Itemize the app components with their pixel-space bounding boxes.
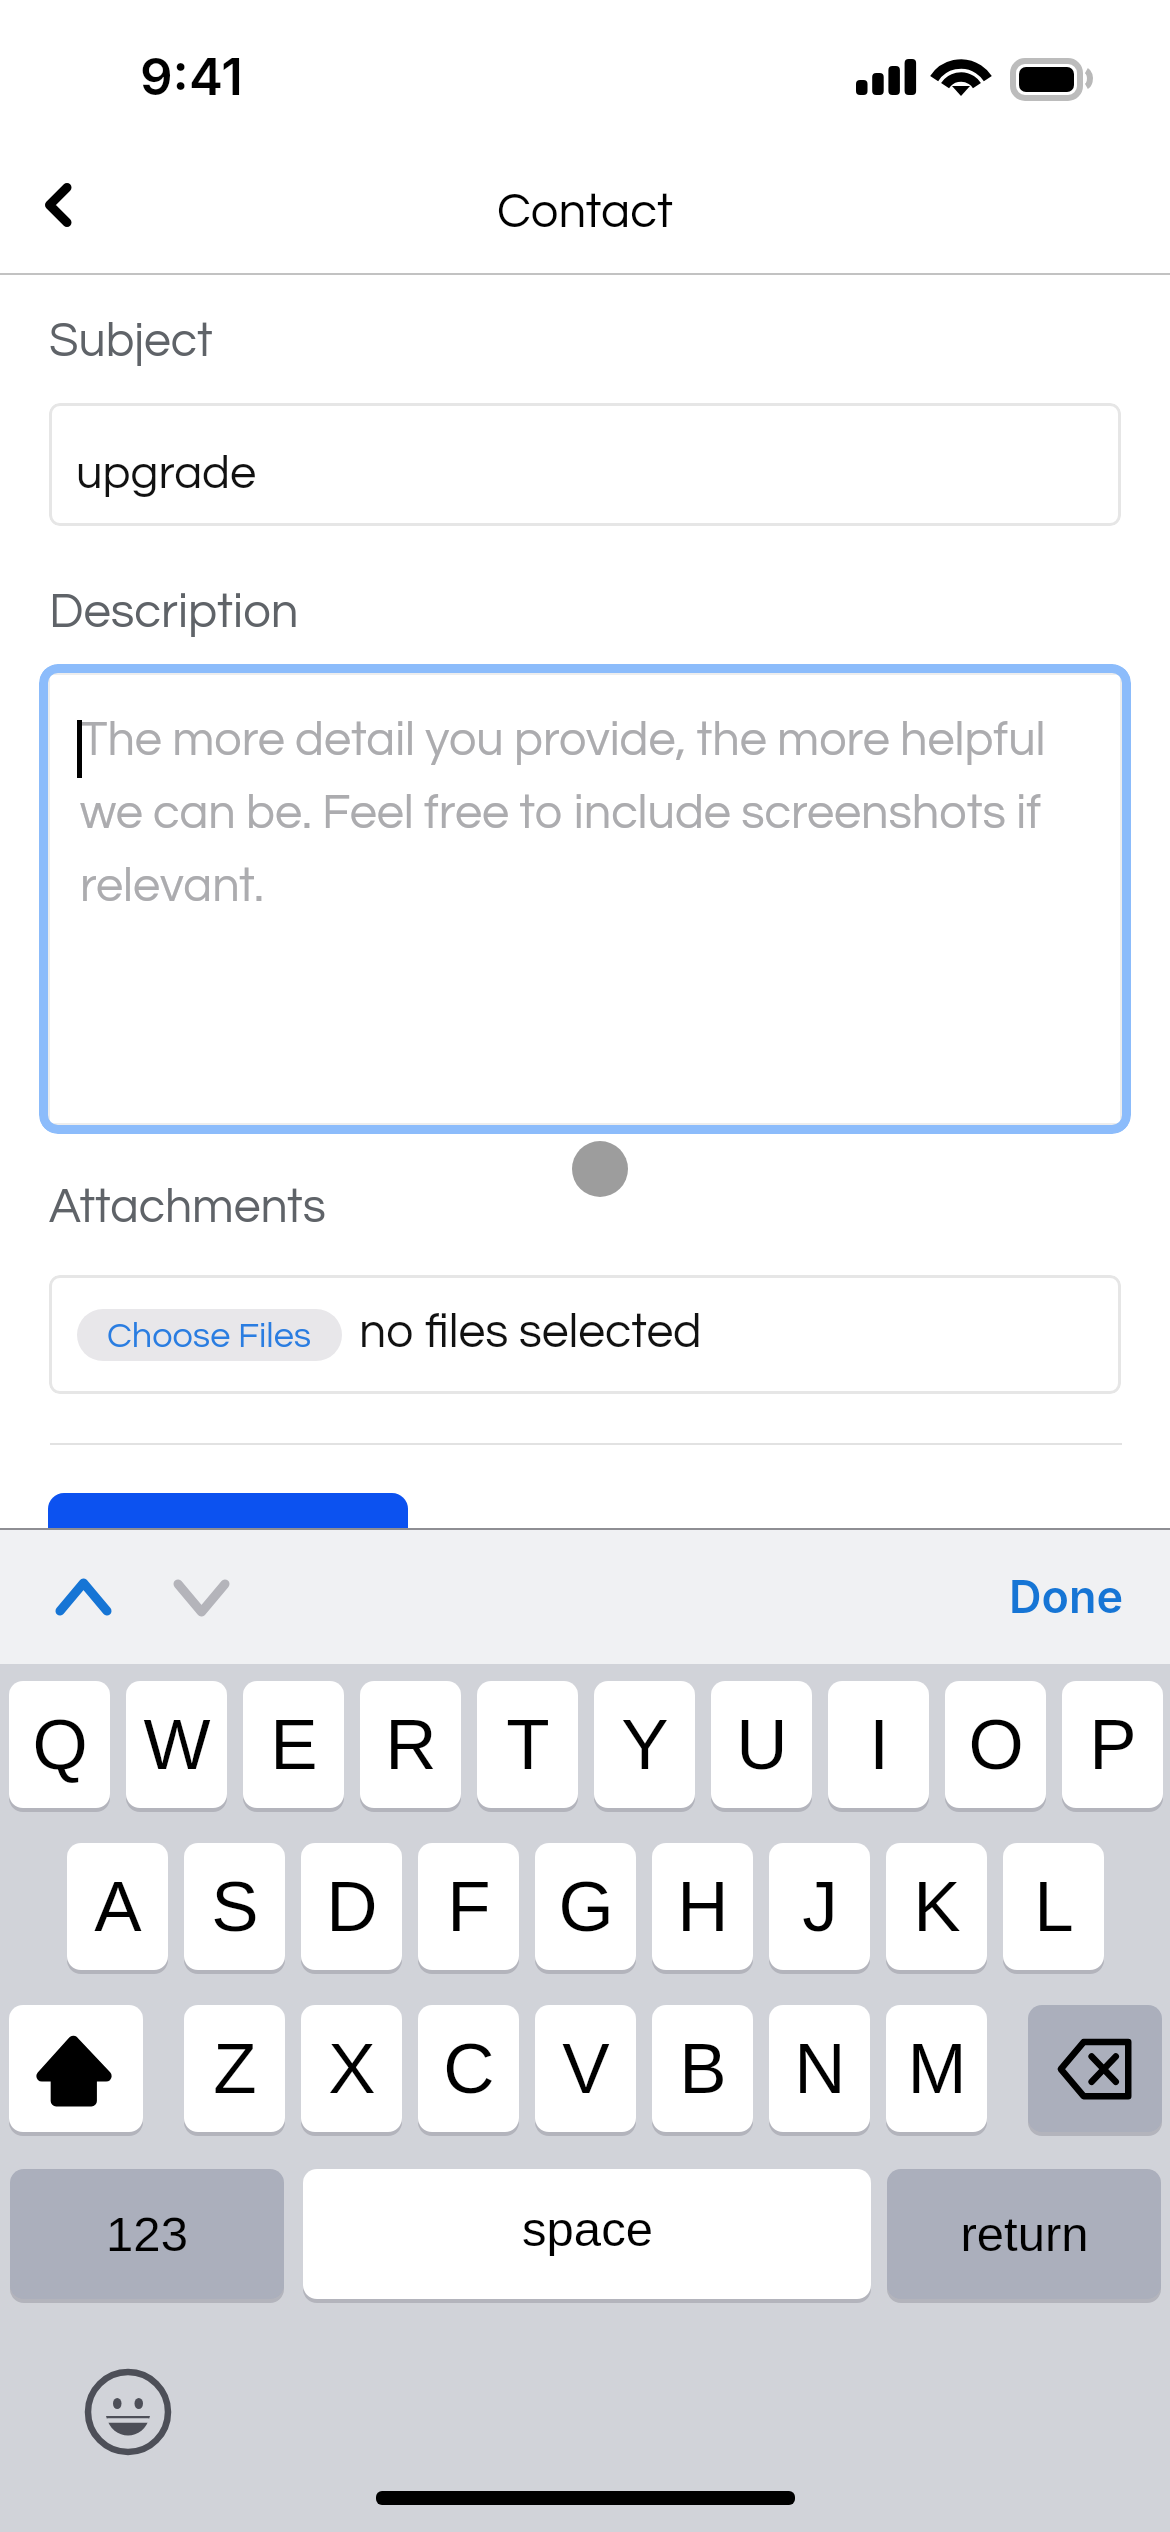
button[interactable]: Choose Files [77,1309,342,1361]
staticText: L [1034,1867,1074,1946]
staticText: Done [1009,1569,1124,1623]
staticText: T [506,1705,550,1784]
button[interactable]: O [945,1681,1046,1808]
button[interactable]: V [535,2005,636,2132]
button[interactable]: The more detail you provide, the more he… [48,673,1122,1125]
button[interactable]: A [67,1843,168,1970]
button[interactable]: E [243,1681,344,1808]
button[interactable]: L [1003,1843,1104,1970]
button[interactable]: Emoji keyboard [82,2366,174,2458]
button[interactable]: X [301,2005,402,2132]
button[interactable]: T [477,1681,578,1808]
staticText: Y [621,1705,669,1784]
staticText: no files selected [359,1308,702,1357]
button[interactable]: Back [20,163,112,255]
staticText: R [385,1705,437,1784]
staticText: upgrade [76,449,257,497]
button[interactable]: G [535,1843,636,1970]
staticText: P [1089,1705,1137,1784]
button[interactable]: N [769,2005,870,2132]
button[interactable]: Previous field [37,1532,130,1625]
button[interactable]: space [303,2169,871,2299]
button[interactable]: U [711,1681,812,1808]
staticText: X [328,2029,376,2108]
button[interactable]: F [418,1843,519,1970]
button[interactable]: R [360,1681,461,1808]
staticText: 123 [106,2207,188,2262]
staticText: C [443,2029,495,2108]
button[interactable]: J [769,1843,870,1970]
staticText: D [326,1867,378,1946]
button[interactable]: W [126,1681,227,1808]
button[interactable]: upgrade [49,403,1121,526]
staticText: V [562,2029,610,2108]
staticText: B [679,2029,727,2108]
button[interactable]: Z [184,2005,285,2132]
button[interactable]: Done [995,1551,1138,1641]
button[interactable]: S [184,1843,285,1970]
staticText: The more detail you provide, the more he… [80,715,1080,911]
staticText: O [968,1705,1024,1784]
staticText: K [913,1867,961,1946]
button[interactable]: Y [594,1681,695,1808]
staticText: W [143,1705,211,1784]
staticText: A [94,1867,142,1946]
staticText: space [522,2202,653,2257]
button[interactable]: M [886,2005,987,2132]
button[interactable]: Q [9,1681,110,1808]
staticText: E [270,1705,318,1784]
staticText: I [869,1705,889,1784]
staticText: Q [32,1705,88,1784]
staticText: Z [213,2029,257,2108]
staticText: M [907,2029,967,2108]
button[interactable]: P [1062,1681,1163,1808]
button[interactable]: K [886,1843,987,1970]
staticText: J [802,1867,838,1946]
button[interactable]: Backspace [1028,2005,1162,2132]
staticText: Subject [49,317,213,366]
button[interactable]: 123 [10,2169,284,2299]
staticText: 9:41 [140,46,243,108]
staticText: H [677,1867,729,1946]
staticText: N [794,2029,846,2108]
staticText: U [736,1705,788,1784]
button[interactable]: Resize description field [572,1141,628,1197]
button[interactable]: return [887,2169,1161,2299]
staticText: F [447,1867,491,1946]
button[interactable]: H [652,1843,753,1970]
button[interactable]: C [418,2005,519,2132]
button[interactable]: I [828,1681,929,1808]
button[interactable]: Next field [155,1532,248,1625]
staticText: S [211,1867,259,1946]
staticText: return [960,2207,1089,2262]
button[interactable]: Submit [48,1493,408,1583]
staticText: Attachments [49,1183,326,1232]
staticText: G [558,1867,614,1946]
button[interactable]: Shift [9,2005,143,2132]
staticText: Description [49,587,299,637]
button[interactable]: B [652,2005,753,2132]
button[interactable]: D [301,1843,402,1970]
staticText: Choose Files [107,1317,312,1354]
staticText: Contact [497,187,673,237]
